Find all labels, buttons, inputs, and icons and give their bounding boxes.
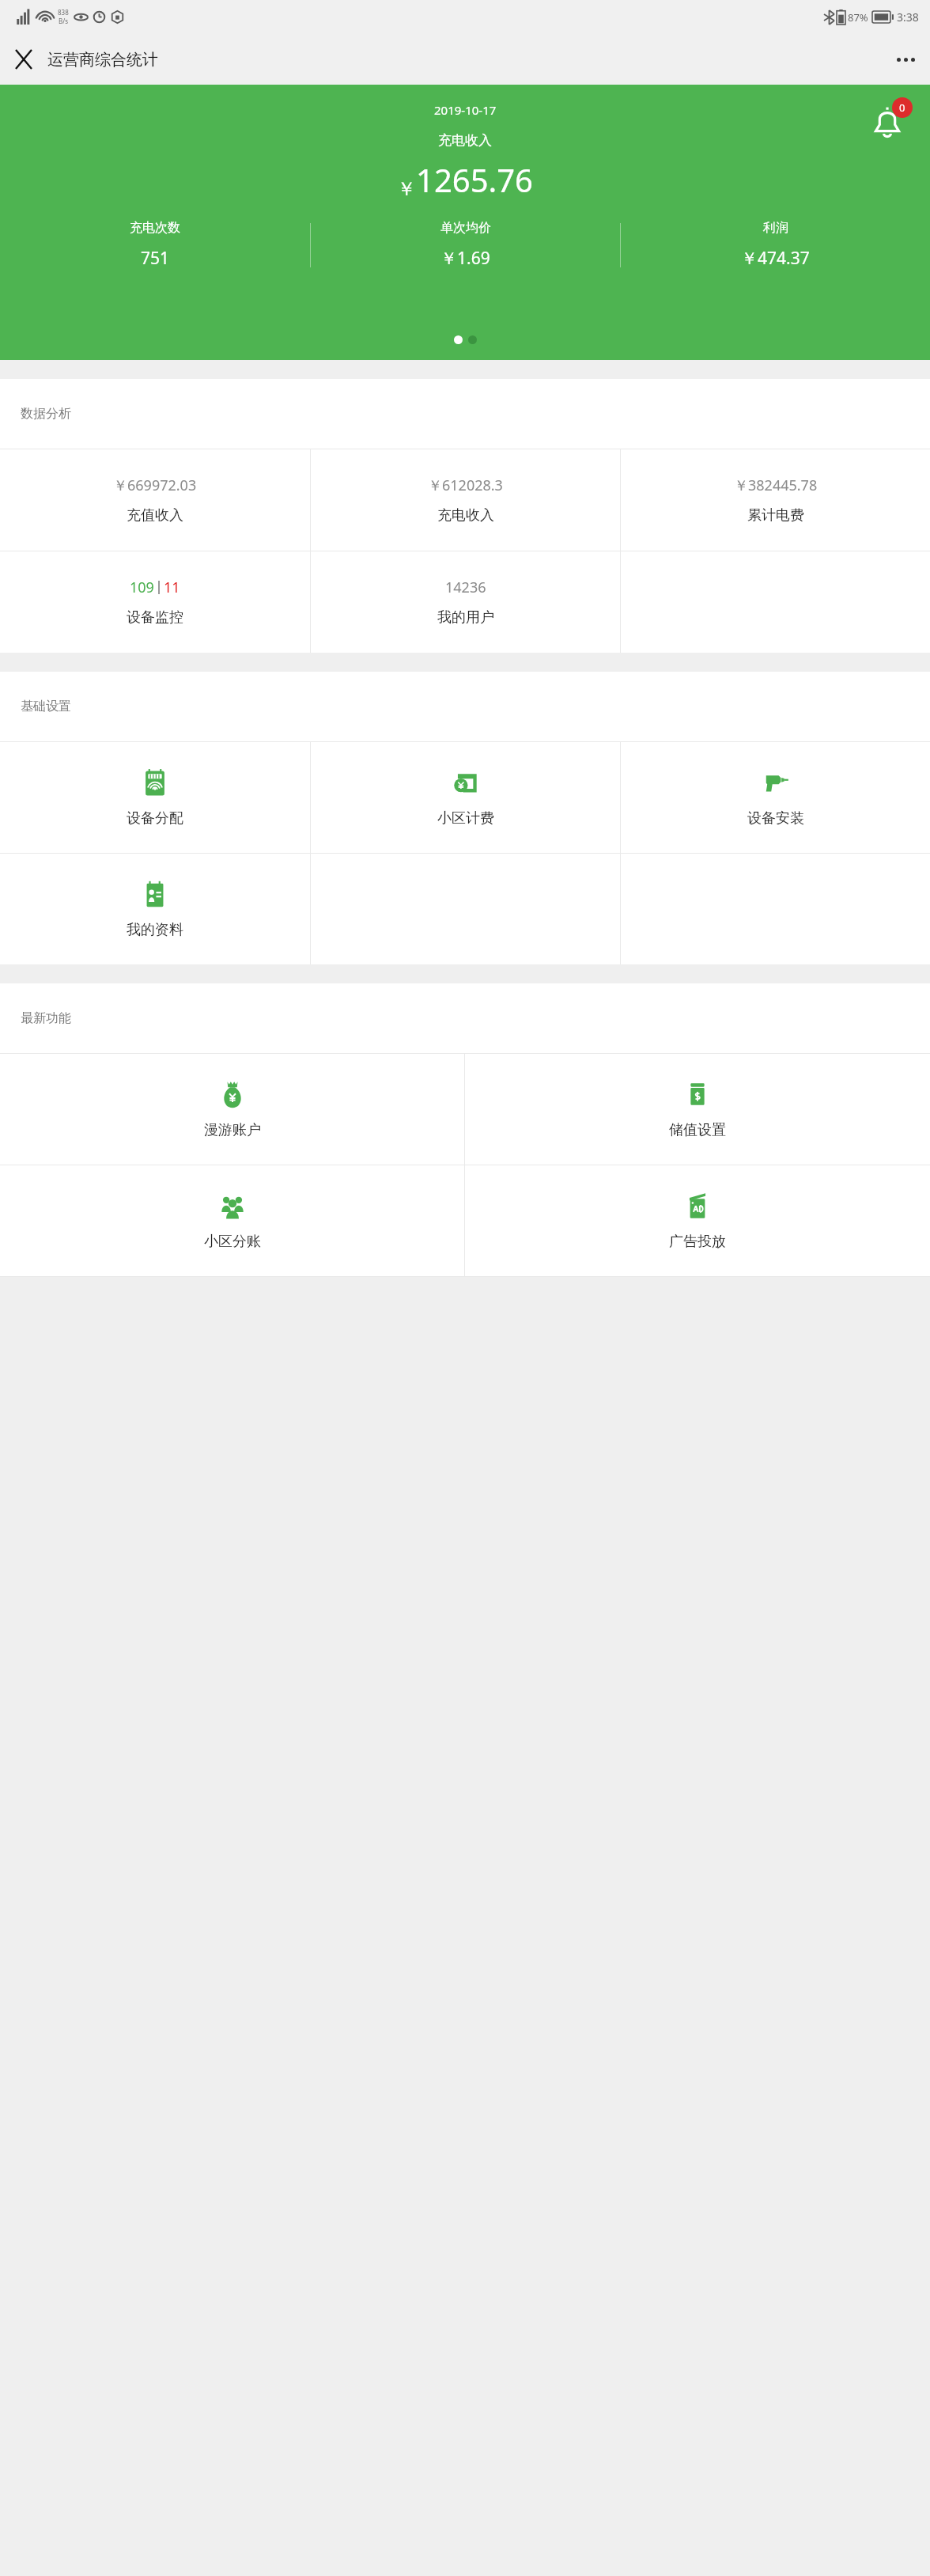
staticText: 广告投放 — [669, 1233, 726, 1251]
staticText: 0 — [899, 100, 905, 115]
button[interactable]: 14236 — [311, 551, 620, 653]
staticText: 设备分配 — [127, 809, 183, 828]
staticText: ￥ — [397, 177, 416, 201]
staticText: 小区计费 — [437, 809, 494, 828]
button[interactable]: 广告投放 — [465, 1165, 930, 1276]
staticText: ￥669972.03 — [113, 475, 197, 495]
button[interactable]: 漫游账户 — [0, 1054, 464, 1165]
staticText: 充电次数 — [130, 220, 180, 236]
staticText: 最新功能 — [21, 1010, 71, 1026]
button[interactable]: ￥612028.3 — [311, 449, 620, 551]
button[interactable]: 充电次数 — [0, 220, 310, 270]
button[interactable]: 我的资料 — [0, 854, 310, 964]
staticText: 2019-10-17 — [434, 102, 497, 118]
staticText: 运营商综合统计 — [47, 50, 158, 70]
staticText: 充电收入 — [437, 506, 494, 525]
button[interactable]: 设备分配 — [0, 742, 310, 853]
staticText: 设备安装 — [747, 809, 804, 828]
button[interactable]: 更多 — [881, 35, 930, 84]
staticText: 储值设置 — [669, 1121, 726, 1139]
staticText: 基础设置 — [21, 699, 71, 714]
staticText: 累计电费 — [747, 506, 804, 525]
staticText: ￥382445.78 — [734, 475, 818, 495]
button[interactable]: 单次均价 — [311, 220, 620, 270]
staticText: 3:38 — [897, 9, 919, 25]
staticText: 充电收入 — [438, 132, 492, 149]
button[interactable]: 小区分账 — [0, 1165, 464, 1276]
staticText: ￥1.69 — [440, 247, 490, 270]
staticText: 数据分析 — [21, 406, 71, 422]
staticText: 单次均价 — [440, 220, 491, 236]
staticText: 14236 — [445, 578, 486, 597]
staticText: 11 — [164, 578, 180, 597]
staticText: 109 — [130, 578, 154, 597]
staticText: 1265.76 — [416, 158, 533, 201]
staticText: 设备监控 — [127, 608, 183, 627]
button[interactable]: 小区计费 — [311, 742, 620, 853]
staticText: 751 — [141, 247, 170, 270]
staticText: 87% — [848, 10, 868, 25]
button[interactable]: 利润 — [621, 220, 930, 270]
staticText: 我的资料 — [127, 921, 183, 939]
button[interactable]: 通知 — [864, 99, 911, 146]
button[interactable]: ￥669972.03 — [0, 449, 310, 551]
staticText: 利润 — [763, 220, 788, 236]
button[interactable]: 设备安装 — [621, 742, 930, 853]
staticText: 我的用户 — [437, 608, 494, 627]
staticText: B/s — [59, 17, 69, 25]
staticText: ￥612028.3 — [428, 475, 503, 495]
button[interactable]: 储值设置 — [465, 1054, 930, 1165]
button[interactable]: 关闭 — [0, 36, 47, 83]
staticText: 838 — [58, 8, 69, 17]
staticText: 小区分账 — [204, 1233, 261, 1251]
button[interactable]: 109 — [0, 551, 310, 653]
staticText: 充值收入 — [127, 506, 183, 525]
staticText: ￥474.37 — [741, 247, 810, 270]
button[interactable]: ￥382445.78 — [621, 449, 930, 551]
staticText: 漫游账户 — [204, 1121, 261, 1139]
